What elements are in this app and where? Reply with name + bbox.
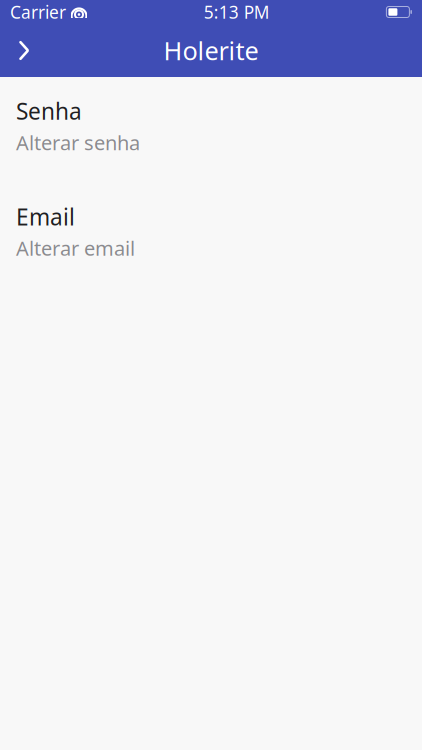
button[interactable]: Senha bbox=[0, 86, 422, 166]
button[interactable]: Back bbox=[0, 28, 48, 72]
staticText: Senha bbox=[16, 96, 82, 126]
staticText: Alterar email bbox=[16, 235, 135, 261]
button[interactable]: Email bbox=[0, 192, 422, 271]
staticText: Alterar senha bbox=[16, 129, 140, 156]
staticText: Carrier bbox=[10, 0, 66, 23]
staticText: Holerite bbox=[163, 34, 258, 67]
staticText: 5:13 PM bbox=[204, 0, 270, 23]
staticText: Email bbox=[16, 202, 75, 232]
